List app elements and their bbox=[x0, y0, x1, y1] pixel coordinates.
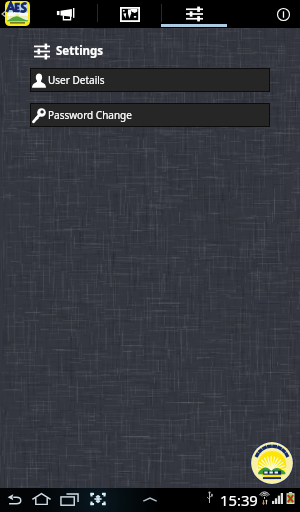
button[interactable]: User Details bbox=[31, 69, 269, 91]
button[interactable]: Map bbox=[98, 0, 161, 28]
button[interactable]: Announcements bbox=[36, 0, 97, 28]
staticText: Password Change bbox=[48, 108, 132, 122]
button[interactable]: Anatolia logo bbox=[250, 441, 294, 485]
button[interactable]: Password Change bbox=[31, 104, 269, 126]
button[interactable]: Home bbox=[32, 493, 51, 505]
staticText: 15:39 bbox=[220, 490, 258, 510]
button[interactable]: Back bbox=[7, 494, 22, 505]
button[interactable]: App logo bbox=[5, 1, 30, 26]
button[interactable]: Screenshot bbox=[89, 492, 107, 506]
button[interactable]: Info bbox=[228, 0, 300, 28]
button[interactable]: Settings bbox=[162, 0, 227, 28]
button[interactable]: Expand bbox=[142, 496, 158, 503]
button[interactable]: Recent apps bbox=[60, 493, 79, 506]
staticText: Settings bbox=[56, 43, 104, 59]
staticText: User Details bbox=[48, 73, 105, 87]
